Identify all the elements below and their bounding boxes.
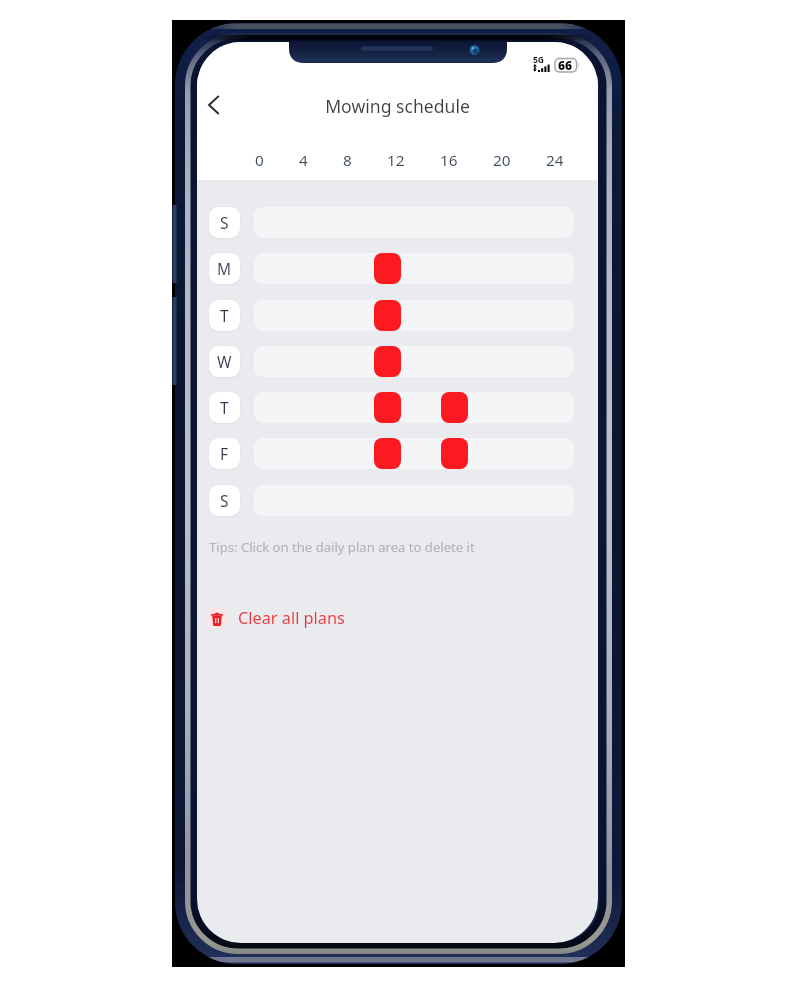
staticText: 16: [440, 150, 458, 171]
button[interactable]: Add plan on Thursday: [254, 392, 574, 423]
button[interactable]: Delete Tuesday plan 9:00 to 11:00: [374, 300, 401, 331]
staticText: 24: [546, 150, 564, 171]
staticText: 20: [493, 150, 511, 171]
staticText: M: [217, 258, 232, 279]
staticText: Clear all plans: [238, 607, 345, 629]
button[interactable]: Add plan on Monday: [254, 253, 574, 284]
button[interactable]: Add plan on Wednesday: [254, 346, 574, 377]
staticText: Tips: Click on the daily plan area to de…: [209, 538, 475, 556]
button[interactable]: Delete Thursday plan 9:00 to 11:00: [374, 392, 401, 423]
staticText: T: [220, 397, 229, 418]
staticText: T: [220, 305, 229, 326]
staticText: W: [217, 351, 232, 372]
staticText: 66: [558, 57, 573, 73]
button[interactable]: Delete Friday plan 9:00 to 11:00: [374, 438, 401, 469]
staticText: S: [220, 490, 229, 511]
button[interactable]: Back: [197, 83, 241, 127]
staticText: S: [220, 212, 229, 233]
staticText: F: [220, 443, 229, 464]
staticText: 12: [387, 150, 405, 171]
button[interactable]: Add plan on Friday: [254, 438, 574, 469]
staticText: Mowing schedule: [197, 94, 598, 118]
button[interactable]: Delete Thursday plan 14:00 to 16:00: [441, 392, 468, 423]
staticText: 8: [343, 150, 352, 171]
button[interactable]: Delete Monday plan 9:00 to 11:00: [374, 253, 401, 284]
button[interactable]: Delete Wednesday plan 9:00 to 11:00: [374, 346, 401, 377]
button[interactable]: Clear all plans: [206, 605, 345, 631]
button[interactable]: Delete Friday plan 14:00 to 16:00: [441, 438, 468, 469]
staticText: 5G: [533, 54, 545, 66]
staticText: 4: [299, 150, 308, 171]
staticText: 0: [255, 150, 264, 171]
button[interactable]: Add plan on Tuesday: [254, 300, 574, 331]
